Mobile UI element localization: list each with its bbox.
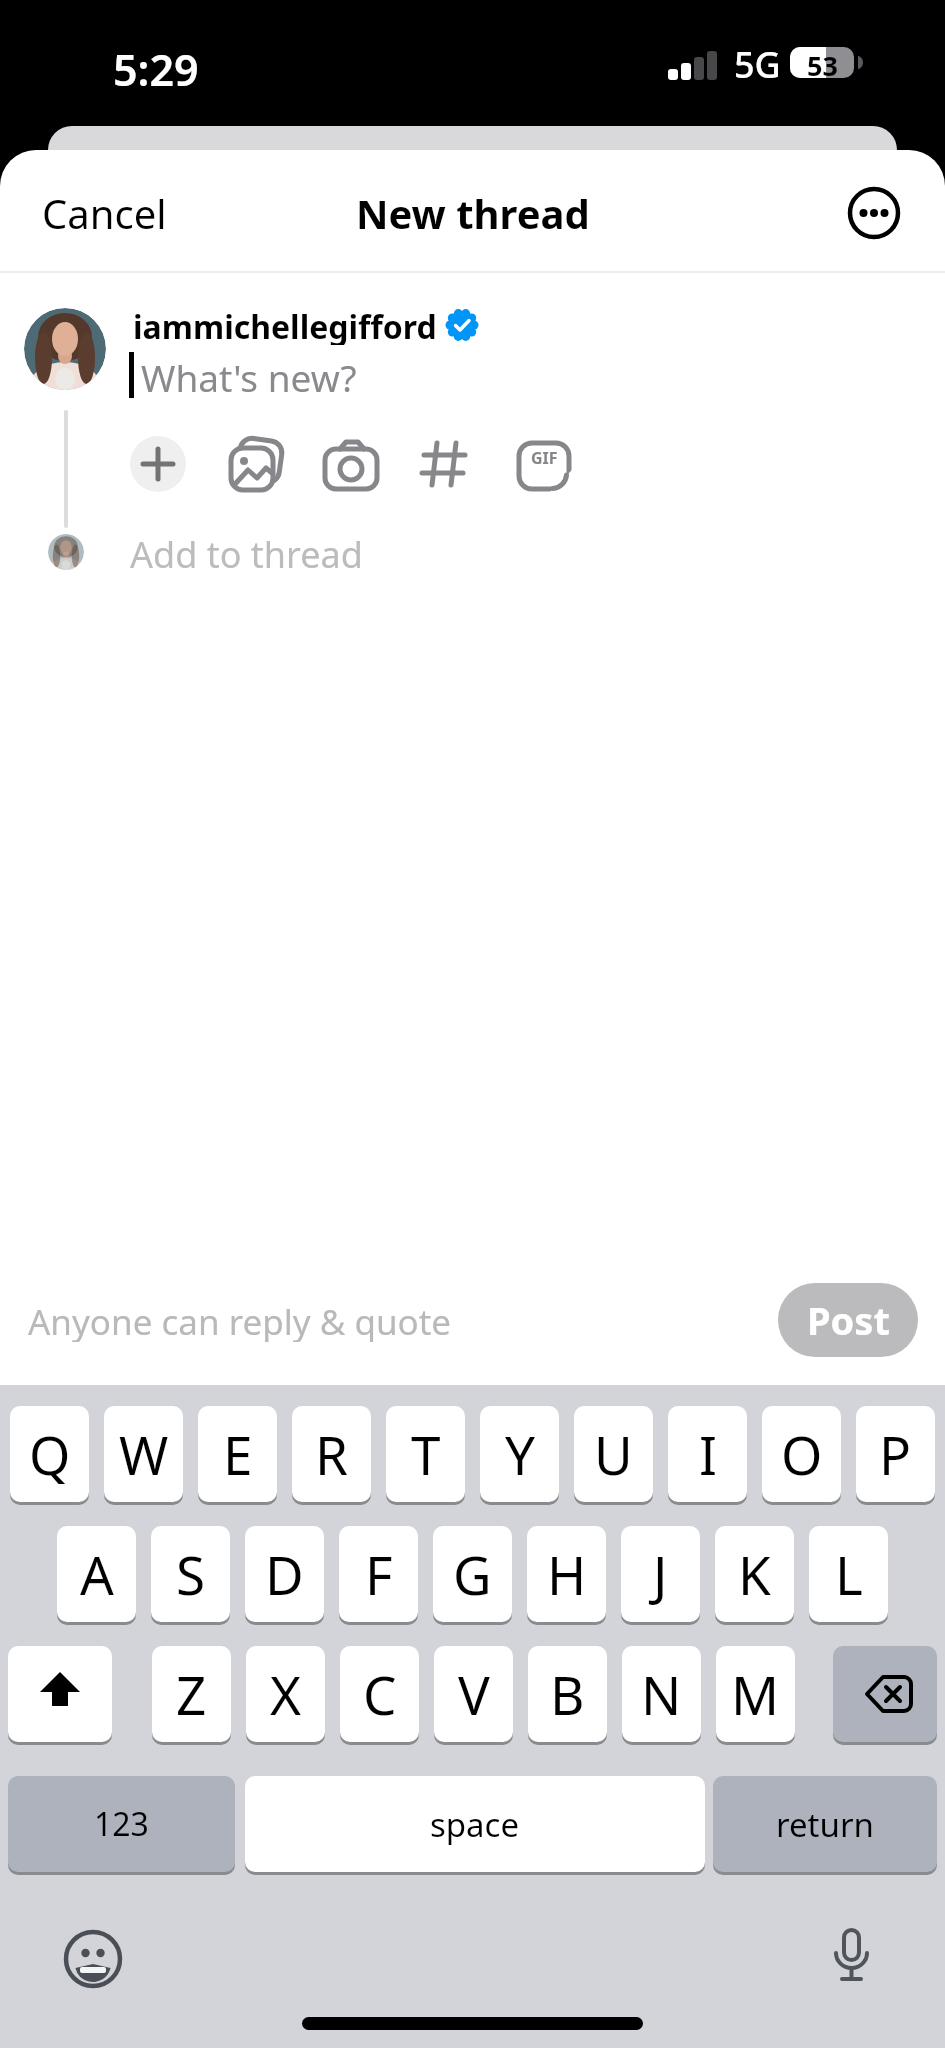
button[interactable] <box>824 1924 878 1994</box>
button[interactable]: B <box>528 1646 607 1742</box>
button[interactable]: Post <box>778 1283 918 1357</box>
staticText: H <box>547 1538 587 1610</box>
staticText: Z <box>176 1658 207 1730</box>
staticText: J <box>653 1538 668 1610</box>
staticText: Post <box>807 1294 890 1346</box>
button[interactable]: X <box>246 1646 325 1742</box>
button[interactable]: S <box>151 1526 230 1622</box>
staticText: W <box>119 1418 169 1490</box>
button[interactable]: G <box>433 1526 512 1622</box>
button[interactable]: Q <box>10 1406 89 1502</box>
button[interactable]: D <box>245 1526 324 1622</box>
button[interactable]: V <box>434 1646 513 1742</box>
staticText: I <box>699 1418 717 1490</box>
staticText: S <box>176 1538 206 1610</box>
staticText: Add to thread <box>130 530 363 574</box>
button[interactable]: Z <box>152 1646 231 1742</box>
staticText: D <box>265 1538 304 1610</box>
button[interactable]: W <box>104 1406 183 1502</box>
button[interactable]: L <box>809 1526 888 1622</box>
staticText: New thread <box>356 186 590 238</box>
staticText: O <box>781 1418 823 1490</box>
staticText: 53 <box>807 47 838 78</box>
button[interactable]: 123 <box>8 1776 235 1872</box>
button[interactable]: T <box>386 1406 465 1502</box>
staticText: M <box>731 1658 780 1730</box>
staticText: C <box>363 1658 397 1730</box>
staticText: iammichellegifford <box>133 305 437 345</box>
button[interactable] <box>322 437 380 495</box>
button[interactable]: return <box>713 1776 937 1872</box>
button[interactable] <box>833 1646 937 1742</box>
button[interactable]: R <box>292 1406 371 1502</box>
staticText: B <box>550 1658 585 1730</box>
button[interactable]: J <box>621 1526 700 1622</box>
staticText: return <box>776 1802 874 1847</box>
button[interactable]: N <box>622 1646 701 1742</box>
staticText: L <box>835 1538 863 1610</box>
button[interactable] <box>844 183 904 243</box>
staticText: 123 <box>94 1802 149 1846</box>
staticText: R <box>315 1418 348 1490</box>
staticText: Y <box>505 1418 535 1490</box>
button[interactable]: I <box>668 1406 747 1502</box>
staticText: N <box>641 1658 682 1730</box>
staticText: What's new? <box>141 352 357 396</box>
staticText: E <box>223 1418 253 1490</box>
staticText: A <box>80 1538 114 1610</box>
button[interactable]: E <box>198 1406 277 1502</box>
button[interactable] <box>228 437 284 493</box>
staticText: space <box>430 1802 520 1847</box>
staticText: X <box>270 1658 302 1730</box>
staticText: T <box>411 1418 441 1490</box>
button[interactable] <box>61 1927 125 1991</box>
button[interactable]: U <box>574 1406 653 1502</box>
staticText: P <box>879 1418 912 1490</box>
button[interactable]: O <box>762 1406 841 1502</box>
button[interactable] <box>8 1646 112 1742</box>
button[interactable]: space <box>245 1776 705 1872</box>
button[interactable]: K <box>715 1526 794 1622</box>
button[interactable]: F <box>339 1526 418 1622</box>
staticText: GIF <box>531 447 558 469</box>
button[interactable]: A <box>57 1526 136 1622</box>
button[interactable]: M <box>716 1646 795 1742</box>
button[interactable] <box>130 436 186 492</box>
staticText: Q <box>29 1418 71 1490</box>
button[interactable]: H <box>527 1526 606 1622</box>
button[interactable]: C <box>340 1646 419 1742</box>
staticText: V <box>458 1658 490 1730</box>
staticText: F <box>365 1538 393 1610</box>
staticText: 5:29 <box>113 40 199 90</box>
button[interactable]: Y <box>480 1406 559 1502</box>
staticText: Anyone can reply & quote <box>28 1298 452 1342</box>
button[interactable]: Cancel <box>42 186 207 238</box>
staticText: U <box>594 1418 633 1490</box>
staticText: G <box>453 1538 492 1610</box>
button[interactable]: P <box>856 1406 935 1502</box>
staticText: 5G <box>734 40 781 86</box>
staticText: K <box>738 1538 771 1610</box>
button[interactable]: GIF <box>516 438 572 494</box>
staticText: Cancel <box>42 186 167 238</box>
button[interactable] <box>420 440 468 488</box>
